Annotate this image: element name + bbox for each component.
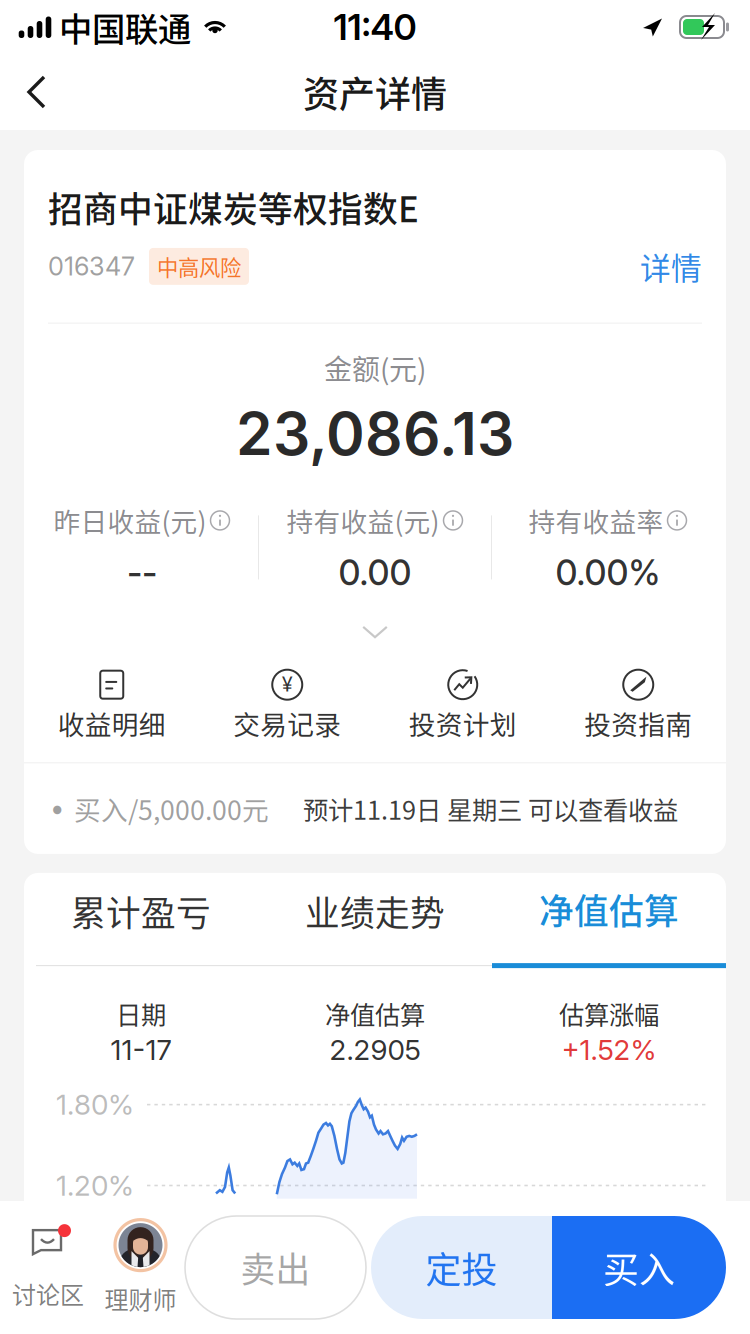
staticText: 净值估算 bbox=[325, 995, 425, 1032]
staticText: 买入 bbox=[603, 1241, 675, 1293]
staticText: 2.2905 bbox=[329, 1033, 420, 1067]
staticText: 资产详情 bbox=[303, 66, 447, 118]
button[interactable]: 定投 bbox=[371, 1216, 552, 1319]
staticText: +1.52% bbox=[561, 1033, 656, 1067]
staticText: ¥ bbox=[282, 672, 293, 696]
button[interactable]: 投资计划 bbox=[375, 665, 550, 746]
staticText: • bbox=[50, 792, 64, 825]
staticText: 卖出 bbox=[240, 1242, 310, 1293]
staticText: 持有收益率 bbox=[528, 501, 663, 540]
staticText: 金额(元) bbox=[324, 348, 426, 388]
button[interactable]: 净值估算 bbox=[492, 884, 726, 968]
button[interactable]: 累计盈亏 bbox=[24, 886, 258, 966]
staticText: 11:40 bbox=[333, 5, 416, 49]
staticText: 23,086.13 bbox=[236, 398, 514, 469]
staticText: 收益明细 bbox=[58, 704, 166, 742]
staticText: 1.20% bbox=[56, 1169, 134, 1202]
button[interactable]: 业绩走势 bbox=[258, 886, 492, 966]
staticText: 净值估算 bbox=[539, 884, 679, 934]
button[interactable]: 卖出 bbox=[185, 1216, 366, 1319]
staticText: 日期 bbox=[116, 995, 166, 1032]
button[interactable]: 理财师 bbox=[96, 1216, 185, 1319]
staticText: 业绩走势 bbox=[305, 886, 445, 936]
staticText: 昨日收益(元) bbox=[53, 501, 206, 540]
staticText: 016347 bbox=[48, 251, 135, 282]
staticText: 0.00% bbox=[555, 552, 660, 594]
button[interactable]: 返回 bbox=[0, 54, 75, 130]
staticText: 预计11.19日 星期三 可以查看收益 bbox=[303, 790, 678, 827]
staticText: 理财师 bbox=[104, 1281, 176, 1316]
staticText: 11-17 bbox=[110, 1033, 171, 1067]
staticText: 定投 bbox=[425, 1241, 497, 1293]
staticText: 讨论区 bbox=[12, 1276, 84, 1311]
staticText: -- bbox=[127, 552, 157, 594]
staticText: 持有收益(元) bbox=[286, 501, 439, 540]
staticText: 招商中证煤炭等权指数E bbox=[48, 182, 419, 232]
button[interactable]: 收益明细 bbox=[24, 665, 199, 746]
staticText: 买入/5,000.00元 bbox=[74, 789, 269, 828]
button[interactable]: 买入 bbox=[552, 1216, 726, 1319]
staticText: 中高风险 bbox=[157, 251, 241, 282]
staticText: 投资指南 bbox=[584, 704, 692, 742]
button[interactable]: 讨论区 bbox=[0, 1216, 96, 1319]
button[interactable]: 详情 bbox=[640, 244, 702, 289]
staticText: 投资计划 bbox=[409, 704, 517, 742]
staticText: 估算涨幅 bbox=[559, 995, 659, 1032]
staticText: 累计盈亏 bbox=[71, 886, 211, 936]
staticText: 0.00 bbox=[338, 552, 411, 594]
staticText: 1.80% bbox=[56, 1088, 134, 1122]
staticText: 详情 bbox=[640, 244, 702, 289]
button[interactable]: 投资指南 bbox=[550, 665, 726, 746]
button[interactable]: ¥ bbox=[199, 665, 375, 746]
staticText: 中国联通 bbox=[59, 3, 191, 51]
staticText: 交易记录 bbox=[233, 704, 341, 742]
